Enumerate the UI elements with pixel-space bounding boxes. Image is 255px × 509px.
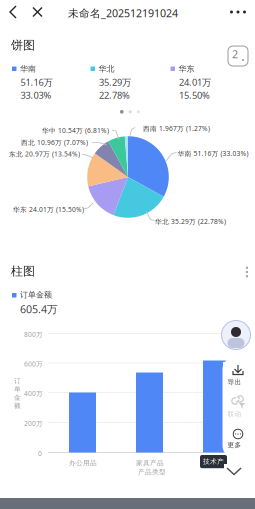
staticText: 0 (38, 449, 42, 458)
button[interactable]: More options (222, 0, 254, 24)
staticText: 2 (232, 47, 238, 61)
staticText: 华北 (98, 64, 114, 74)
button[interactable]: 联动 (223, 394, 253, 418)
staticText: 办公用品 (69, 459, 97, 467)
staticText: 800万 (24, 330, 43, 339)
button[interactable]: 导出 (223, 362, 253, 386)
staticText: 华南 51.16万 (33.03%) (177, 149, 248, 158)
button[interactable]: Pages (220, 38, 255, 74)
staticText: 200万 (24, 419, 43, 428)
button[interactable]: Close (25, 0, 51, 24)
staticText: 未命名_202512191024 (68, 6, 178, 20)
button[interactable]: Back (0, 0, 26, 24)
button[interactable]: Expand (224, 464, 244, 478)
staticText: 柱图 (11, 264, 35, 279)
staticText: 33.03% (20, 89, 51, 101)
staticText: 24.01万 (179, 76, 211, 88)
staticText: 22.78% (99, 89, 130, 101)
staticText: 导出 (227, 378, 241, 386)
staticText: 35.29万 (99, 76, 131, 88)
staticText: 15.50% (179, 89, 210, 101)
staticText: 西南 1.967万 (1.27%) (143, 124, 210, 133)
staticText: 联动 (227, 410, 241, 418)
staticText: 金 (14, 393, 21, 402)
staticText: 家具产品 (136, 459, 164, 467)
staticText: 订 (14, 377, 21, 385)
staticText: 西北 10.96万 (7.07%) (21, 138, 88, 147)
button[interactable]: 更多 (223, 425, 253, 449)
staticText: 额 (14, 402, 21, 410)
staticText: 605.4万 (20, 302, 58, 316)
staticText: 600万 (24, 359, 43, 368)
staticText: 华北 35.29万 (22.78%) (155, 217, 226, 226)
staticText: 产品类型 (138, 468, 166, 476)
staticText: 华中 10.54万 (6.81%) (42, 126, 109, 135)
staticText: 订单金额 (20, 290, 52, 300)
button[interactable]: Chart options (238, 262, 255, 282)
staticText: 东北 20.97万 (13.54%) (9, 149, 80, 158)
staticText: 华东 24.01万 (15.50%) (13, 205, 84, 214)
staticText: 华南 (20, 64, 36, 74)
staticText: 单 (14, 385, 21, 393)
staticText: 更多 (227, 441, 241, 449)
staticText: 华东 (178, 64, 194, 74)
staticText: 饼图 (11, 38, 35, 53)
staticText: 400万 (24, 389, 43, 398)
staticText: 技术产 (203, 457, 224, 466)
staticText: 51.16万 (20, 76, 52, 88)
